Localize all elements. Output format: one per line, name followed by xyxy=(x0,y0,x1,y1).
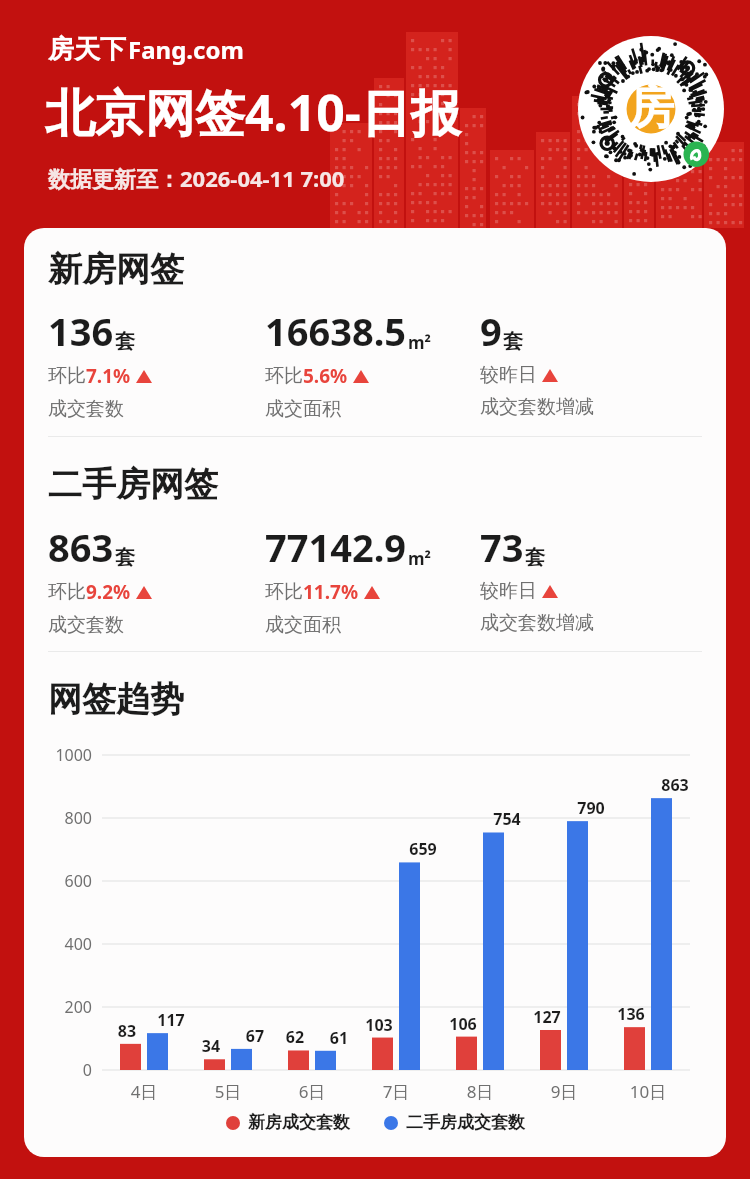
staticText: 0 xyxy=(34,1059,92,1081)
staticText: 9 xyxy=(480,305,502,357)
staticText: 67 xyxy=(235,1025,275,1047)
staticText: 83 xyxy=(107,1020,147,1042)
staticText: m² xyxy=(408,331,432,354)
staticText: Fang.com xyxy=(128,33,244,66)
staticText: 77142.9 xyxy=(265,521,407,573)
staticText: 北京网签4.10-日报 xyxy=(45,78,461,146)
staticText: 8日 xyxy=(450,1080,510,1103)
staticText: 73 xyxy=(480,521,524,573)
staticText: 11.7% xyxy=(303,579,359,605)
staticText: 成交套数 xyxy=(48,613,124,637)
staticText: 房天下 xyxy=(48,33,126,66)
staticText: 套 xyxy=(115,545,135,570)
staticText: 34 xyxy=(191,1035,231,1057)
staticText: 较昨日 xyxy=(480,363,537,387)
staticText: 环比 xyxy=(265,580,303,604)
staticText: 新房成交套数 xyxy=(248,1112,350,1133)
staticText: 数据更新至：2026-04-11 7:00 xyxy=(48,163,345,193)
staticText: 400 xyxy=(34,933,92,955)
staticText: 房 xyxy=(628,79,674,137)
staticText: 网签趋势 xyxy=(48,678,184,721)
staticText: 4日 xyxy=(114,1080,174,1103)
staticText: 套 xyxy=(503,329,523,354)
staticText: 103 xyxy=(359,1014,399,1036)
button[interactable]: 新房成交套数 xyxy=(226,1112,350,1133)
staticText: 套 xyxy=(115,329,135,354)
staticText: 136 xyxy=(48,305,114,357)
staticText: 16638.5 xyxy=(265,305,407,357)
staticText: 136 xyxy=(611,1003,651,1025)
staticText: 106 xyxy=(443,1013,483,1035)
staticText: 9日 xyxy=(534,1080,594,1103)
staticText: 7日 xyxy=(366,1080,426,1103)
staticText: 790 xyxy=(571,797,611,819)
staticText: 62 xyxy=(275,1026,315,1048)
staticText: 新房网签 xyxy=(48,248,184,291)
staticText: 二手房成交套数 xyxy=(406,1112,525,1133)
button[interactable]: 小程序二维码 xyxy=(578,36,724,182)
staticText: 成交面积 xyxy=(265,397,341,421)
staticText: 6日 xyxy=(282,1080,342,1103)
staticText: 成交套数 xyxy=(48,397,124,421)
staticText: 754 xyxy=(487,808,527,830)
staticText: 套 xyxy=(525,545,545,570)
staticText: 863 xyxy=(48,521,114,573)
staticText: 127 xyxy=(527,1006,567,1028)
staticText: 863 xyxy=(655,774,695,796)
staticText: 9.2% xyxy=(86,579,131,605)
staticText: 二手房网签 xyxy=(48,463,218,506)
staticText: 成交面积 xyxy=(265,613,341,637)
staticText: 5日 xyxy=(198,1080,258,1103)
staticText: 10日 xyxy=(618,1080,678,1103)
staticText: 61 xyxy=(319,1027,359,1049)
staticText: 117 xyxy=(151,1009,191,1031)
staticText: 600 xyxy=(34,870,92,892)
staticText: 659 xyxy=(403,838,443,860)
staticText: 环比 xyxy=(48,580,86,604)
staticText: 成交套数增减 xyxy=(480,611,594,635)
staticText: 环比 xyxy=(48,364,86,388)
staticText: 1000 xyxy=(34,744,92,766)
staticText: 较昨日 xyxy=(480,579,537,603)
staticText: 200 xyxy=(34,996,92,1018)
staticText: m² xyxy=(408,547,432,570)
staticText: 800 xyxy=(34,807,92,829)
staticText: 成交套数增减 xyxy=(480,395,594,419)
staticText: 环比 xyxy=(265,364,303,388)
staticText: 5.6% xyxy=(303,363,348,389)
staticText: 7.1% xyxy=(86,363,131,389)
button[interactable]: 二手房成交套数 xyxy=(384,1112,525,1133)
